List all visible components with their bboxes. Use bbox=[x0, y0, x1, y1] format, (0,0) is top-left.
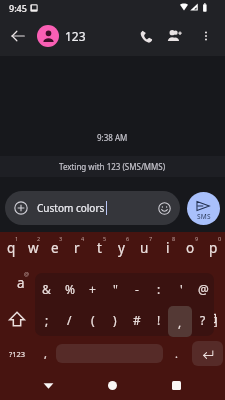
button[interactable]: : bbox=[148, 273, 170, 304]
staticText: x bbox=[62, 308, 70, 326]
button[interactable]: z bbox=[33, 301, 55, 336]
button[interactable]: Backspace bbox=[191, 301, 225, 336]
button[interactable]: ) bbox=[104, 304, 126, 336]
staticText: ( bbox=[91, 312, 95, 328]
button[interactable]: s bbox=[32, 267, 54, 302]
button[interactable]: l bbox=[191, 267, 214, 302]
staticText: t bbox=[97, 239, 102, 257]
staticText: SMS bbox=[197, 212, 211, 221]
staticText: ' bbox=[180, 281, 183, 297]
button[interactable]: Call bbox=[132, 22, 160, 50]
button[interactable]: ' bbox=[170, 273, 192, 304]
staticText: ) bbox=[113, 312, 117, 328]
staticText: % bbox=[65, 281, 75, 297]
staticText: 0 bbox=[218, 235, 222, 242]
button[interactable]: % bbox=[58, 273, 81, 304]
staticText: y bbox=[118, 239, 125, 257]
staticText: e bbox=[51, 239, 59, 257]
staticText: / bbox=[67, 312, 72, 328]
staticText: s bbox=[40, 274, 47, 292]
button[interactable]: , bbox=[170, 304, 192, 336]
button[interactable]: More options bbox=[192, 22, 220, 50]
button[interactable]: Back bbox=[4, 22, 32, 50]
staticText: d bbox=[61, 274, 70, 292]
button[interactable]: ! bbox=[148, 304, 170, 336]
button[interactable]: , bbox=[168, 306, 192, 337]
staticText: m bbox=[173, 308, 186, 326]
button[interactable]: # bbox=[126, 304, 148, 336]
staticText: v bbox=[107, 308, 114, 326]
button[interactable]: 0 bbox=[202, 232, 225, 267]
button[interactable]: 3 bbox=[44, 232, 66, 267]
staticText: 9:45 bbox=[9, 2, 27, 14]
button[interactable]: + bbox=[81, 273, 104, 304]
button[interactable]: & bbox=[35, 273, 58, 304]
button[interactable]: 1 bbox=[0, 232, 22, 267]
staticText: g bbox=[106, 274, 115, 292]
button[interactable]: 8 bbox=[156, 232, 179, 267]
button[interactable]: Back bbox=[32, 370, 64, 400]
staticText: , bbox=[44, 346, 47, 361]
button[interactable]: 123 bbox=[35, 16, 130, 56]
staticText: ? bbox=[200, 312, 206, 328]
staticText: 123 bbox=[65, 28, 86, 44]
button[interactable]: . bbox=[163, 336, 189, 371]
button[interactable]: Shift bbox=[0, 301, 33, 336]
button[interactable]: ? bbox=[192, 304, 214, 336]
button[interactable]: m bbox=[168, 301, 191, 336]
button[interactable]: 9 bbox=[179, 232, 202, 267]
staticText: & bbox=[42, 281, 51, 297]
staticText: @ bbox=[198, 281, 209, 297]
button[interactable]: ?123 bbox=[0, 336, 34, 371]
button[interactable]: v bbox=[99, 301, 122, 336]
button[interactable]: 2 bbox=[22, 232, 44, 267]
button[interactable]: k bbox=[168, 267, 191, 302]
button[interactable]: h bbox=[122, 267, 145, 302]
staticText: + bbox=[89, 281, 96, 297]
button[interactable]: 5 bbox=[88, 232, 110, 267]
staticText: 7 bbox=[149, 235, 153, 242]
button[interactable]: f bbox=[76, 267, 99, 302]
staticText: @ bbox=[24, 270, 29, 277]
staticText: ; bbox=[45, 312, 49, 328]
button[interactable]: 4 bbox=[66, 232, 88, 267]
button[interactable]: 7 bbox=[133, 232, 156, 267]
button[interactable]: @ bbox=[192, 273, 214, 304]
staticText: 2 bbox=[37, 235, 41, 242]
button[interactable]: / bbox=[58, 304, 81, 336]
button[interactable]: c bbox=[77, 301, 99, 336]
button[interactable]: Add people bbox=[160, 22, 188, 50]
button[interactable]: Custom colors bbox=[5, 191, 180, 225]
staticText: f bbox=[85, 274, 90, 292]
staticText: ] bbox=[214, 313, 218, 328]
button[interactable]: @ bbox=[10, 267, 32, 302]
button[interactable]: g bbox=[99, 267, 122, 302]
staticText: l bbox=[201, 274, 205, 292]
staticText: 3 bbox=[59, 235, 63, 242]
staticText: 4 bbox=[81, 235, 85, 242]
staticText: , bbox=[178, 314, 182, 330]
button[interactable]: " bbox=[104, 273, 126, 304]
button[interactable]: ; bbox=[35, 304, 58, 336]
staticText: Texting with 123 (SMS/MMS) bbox=[59, 161, 166, 172]
button[interactable]: Enter bbox=[192, 341, 223, 366]
staticText: , bbox=[179, 312, 183, 328]
button[interactable]: - bbox=[126, 273, 148, 304]
button[interactable]: b bbox=[122, 301, 145, 336]
button[interactable]: Recents bbox=[160, 370, 192, 400]
button[interactable]: Home bbox=[96, 370, 128, 400]
staticText: r bbox=[74, 239, 80, 257]
button[interactable]: x bbox=[55, 301, 77, 336]
button[interactable]: n bbox=[145, 301, 168, 336]
button[interactable]: j bbox=[145, 267, 168, 302]
button[interactable]: d bbox=[54, 267, 76, 302]
staticText: a bbox=[17, 274, 25, 292]
button[interactable]: ( bbox=[81, 304, 104, 336]
staticText: ?123 bbox=[9, 349, 26, 359]
button[interactable]: Send SMS bbox=[187, 192, 220, 225]
button[interactable]: 6 bbox=[110, 232, 133, 267]
staticText: h bbox=[129, 274, 138, 292]
button[interactable]: , bbox=[34, 336, 56, 371]
staticText: 9 bbox=[195, 235, 199, 242]
